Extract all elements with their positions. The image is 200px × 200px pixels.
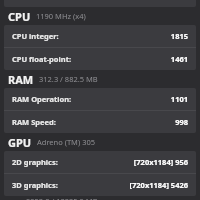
staticText: 3D graphics: xyxy=(12,180,58,190)
staticText: 2D graphics: xyxy=(12,157,58,167)
staticText: 1190 MHz (x4) xyxy=(36,11,86,21)
staticText: Adreno (TM) 305 xyxy=(37,137,95,147)
staticText: [720x1184] 5426 xyxy=(129,180,188,190)
button[interactable]: 3D graphics: xyxy=(4,174,196,196)
staticText: CPU float-point: xyxy=(12,54,72,64)
staticText: 312.3 / 882.5 MB xyxy=(39,74,98,84)
staticText: 998 xyxy=(175,117,188,127)
other: Benchmark results xyxy=(0,0,200,200)
staticText: 1461 xyxy=(170,54,188,64)
button[interactable]: RAM Speed: xyxy=(4,111,196,133)
staticText: 1101 xyxy=(170,94,188,104)
staticText: 1815 xyxy=(170,31,188,41)
button[interactable]: CPU integer: xyxy=(4,25,196,47)
staticText: 9953.8 / 13225.9 MB xyxy=(26,196,98,200)
button[interactable]: RAM Operation: xyxy=(4,88,196,110)
staticText: RAM Speed: xyxy=(12,117,56,127)
staticText: RAM Operation: xyxy=(12,94,72,104)
button[interactable]: 2D graphics: xyxy=(4,151,196,173)
staticText: [720x1184] 956 xyxy=(133,157,188,167)
staticText: CPU integer: xyxy=(12,31,59,41)
staticText: GPU xyxy=(8,135,32,150)
staticText: RAM xyxy=(8,72,34,87)
staticText: CPU xyxy=(8,9,31,24)
button[interactable]: CPU float-point: xyxy=(4,48,196,70)
